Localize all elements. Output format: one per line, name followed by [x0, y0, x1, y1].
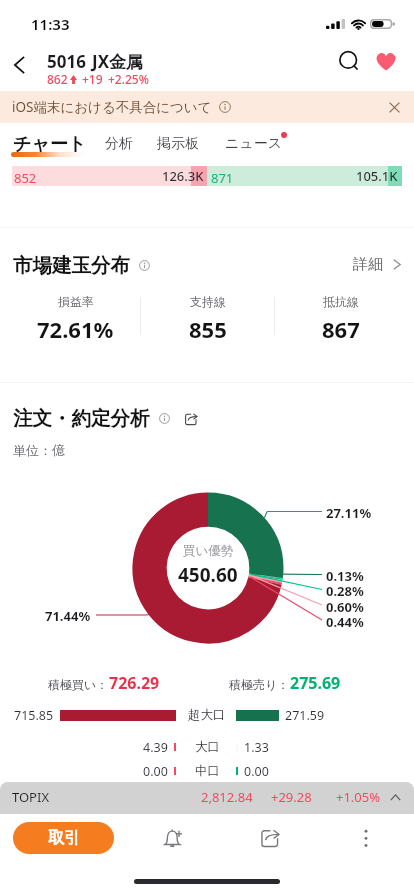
- staticText: 詳細: [353, 255, 383, 274]
- staticText: 855: [189, 314, 227, 344]
- button[interactable]: Share: [247, 815, 292, 860]
- staticText: 71.44%: [45, 607, 91, 625]
- button[interactable]: Alerts: [150, 815, 195, 860]
- staticText: 871: [211, 169, 234, 187]
- staticText: 2,812.84: [201, 788, 253, 806]
- button[interactable]: iOS端末における不具合について: [0, 91, 414, 123]
- staticText: 275.69: [290, 672, 341, 694]
- staticText: JX金属: [92, 50, 144, 73]
- staticText: 450.60: [178, 562, 238, 588]
- staticText: 損益率: [58, 294, 94, 309]
- staticText: ニュース: [225, 135, 282, 153]
- staticText: 4.39: [143, 739, 168, 756]
- button[interactable]: 取引: [13, 822, 114, 854]
- staticText: 超大口: [188, 707, 226, 723]
- staticText: 分析: [105, 135, 133, 153]
- staticText: 0.00: [143, 763, 168, 780]
- staticText: 積極売り：: [229, 677, 290, 692]
- staticText: 大口: [195, 739, 220, 755]
- button[interactable]: Back: [0, 46, 38, 84]
- button[interactable]: ニュース: [225, 135, 282, 153]
- button[interactable]: 掲示板: [157, 135, 199, 153]
- staticText: 0.13%: [326, 567, 364, 585]
- staticText: TOPIX: [12, 788, 50, 806]
- staticText: 726.29: [109, 672, 160, 694]
- button[interactable]: TOPIX: [0, 782, 414, 814]
- staticText: 単位：億: [13, 442, 65, 458]
- staticText: 市場建玉分布: [13, 253, 130, 278]
- staticText: 11:33: [31, 14, 70, 34]
- staticText: 862: [47, 71, 68, 87]
- staticText: 126.3K: [162, 167, 204, 185]
- button[interactable]: Search: [329, 41, 369, 81]
- button[interactable]: チャート: [13, 133, 87, 156]
- staticText: 0.44%: [326, 613, 364, 631]
- staticText: 積極買い：: [48, 677, 109, 692]
- staticText: 271.59: [285, 707, 325, 724]
- staticText: +2.25%: [108, 71, 149, 87]
- staticText: 取引: [48, 828, 80, 848]
- staticText: 0.00: [244, 763, 269, 780]
- staticText: 72.61%: [37, 314, 114, 344]
- staticText: 0.28%: [326, 582, 364, 600]
- staticText: 0.60%: [326, 598, 364, 616]
- staticText: 27.11%: [326, 504, 372, 522]
- staticText: 105.1K: [356, 167, 398, 185]
- staticText: 買い優勢: [183, 543, 234, 559]
- staticText: iOS端末における不具合について: [12, 98, 212, 116]
- staticText: +19: [82, 71, 103, 87]
- button[interactable]: More options: [343, 815, 388, 860]
- staticText: チャート: [13, 133, 87, 156]
- staticText: 抵抗線: [323, 294, 359, 309]
- staticText: 支持線: [190, 294, 226, 309]
- button[interactable]: Close: [388, 101, 401, 114]
- staticText: 852: [14, 169, 37, 187]
- staticText: 5016: [47, 50, 86, 73]
- staticText: 715.85: [14, 707, 54, 724]
- staticText: 867: [322, 314, 360, 344]
- staticText: +29.28: [271, 788, 312, 806]
- button[interactable]: 分析: [105, 135, 133, 153]
- staticText: 1.33: [244, 739, 269, 756]
- staticText: 掲示板: [157, 135, 199, 153]
- staticText: +1.05%: [336, 788, 381, 806]
- button[interactable]: 詳細: [353, 255, 401, 274]
- staticText: 中口: [195, 763, 220, 779]
- staticText: 注文・約定分析: [13, 406, 150, 431]
- button[interactable]: Favorite: [366, 41, 406, 81]
- button[interactable]: Share: [183, 411, 199, 427]
